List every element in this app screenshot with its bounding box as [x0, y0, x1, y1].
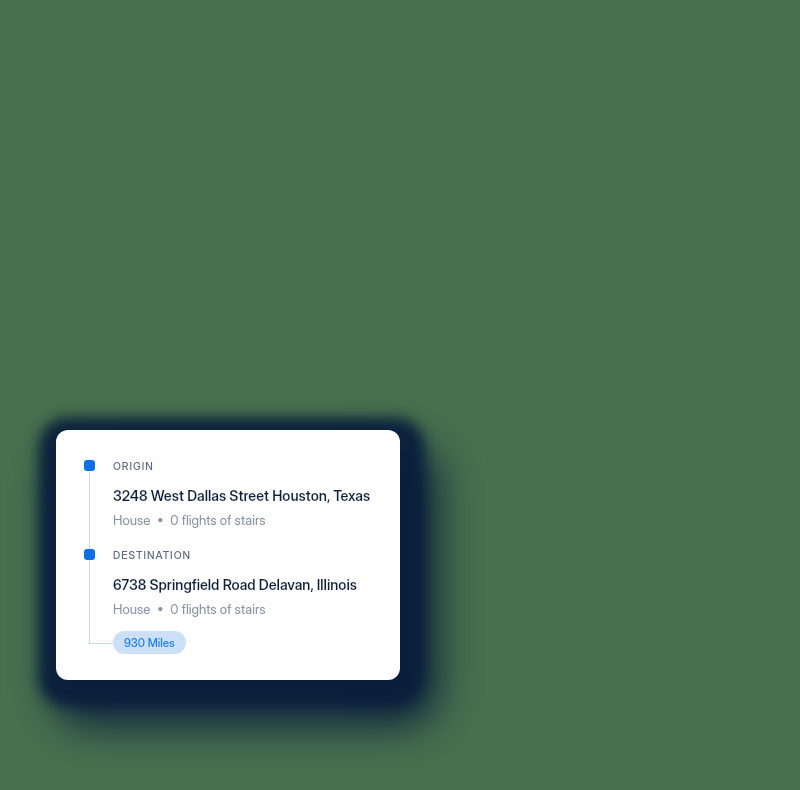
staticText: 3248 West Dallas Street Houston, Texas: [113, 487, 371, 504]
button[interactable]: Origin marker: [56, 430, 400, 680]
staticText: House • 0 flights of stairs: [113, 601, 266, 617]
other: Origin marker: [84, 460, 95, 471]
staticText: DESTINATION: [113, 549, 192, 562]
staticText: 930 Miles: [124, 636, 175, 650]
staticText: ORIGIN: [113, 460, 154, 473]
other: Destination marker: [84, 549, 95, 560]
button[interactable]: 930 Miles: [113, 631, 186, 654]
staticText: House • 0 flights of stairs: [113, 512, 266, 528]
staticText: 6738 Springfield Road Delavan, Illinois: [113, 576, 357, 593]
